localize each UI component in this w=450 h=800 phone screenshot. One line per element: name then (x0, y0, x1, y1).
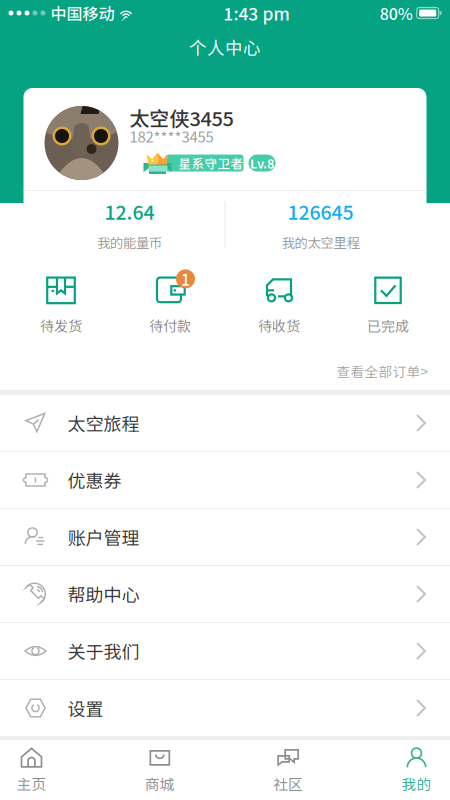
staticText: Lv.8 (250, 154, 274, 172)
button[interactable]: 太空旅程 (0, 395, 450, 452)
button[interactable]: 已完成 (333, 266, 442, 344)
staticText: 12.64 (104, 197, 154, 225)
button[interactable]: 126645 (225, 191, 415, 258)
staticText: 查看全部订单> (336, 361, 428, 381)
button[interactable]: 帮助中心 (0, 566, 450, 623)
staticText: 我的太空里程 (281, 232, 359, 252)
staticText: 个人中心 (189, 34, 261, 60)
staticText: 我的能量币 (97, 232, 162, 252)
button[interactable]: 我的 (384, 740, 448, 800)
button[interactable]: 账户管理 (0, 509, 450, 566)
staticText: 待收货 (258, 315, 300, 336)
button[interactable]: 待发货 (6, 266, 115, 344)
staticText: 已完成 (367, 315, 409, 336)
button[interactable]: 社区 (256, 740, 320, 800)
button[interactable]: 设置 (0, 680, 450, 736)
staticText: 主页 (16, 773, 46, 794)
button[interactable]: 查看全部订单> (0, 352, 450, 390)
staticText: 太空侠3455 (129, 103, 233, 132)
button[interactable]: 关于我们 (0, 623, 450, 680)
staticText: 星系守卫者 (178, 154, 243, 172)
button[interactable]: 主页 (0, 740, 63, 800)
staticText: 帮助中心 (67, 581, 139, 607)
staticText: 80% (380, 1, 413, 25)
button[interactable]: 12.64 (34, 191, 224, 258)
staticText: 1 (181, 267, 190, 290)
staticText: 182****3455 (129, 125, 213, 147)
staticText: 优惠券 (67, 467, 121, 493)
staticText: 我的 (401, 773, 431, 794)
staticText: 126645 (287, 197, 353, 225)
button[interactable]: 优惠券 (0, 452, 450, 509)
staticText: 1:43 pm (224, 0, 290, 26)
staticText: 社区 (273, 773, 303, 794)
staticText: 商城 (145, 773, 175, 794)
staticText: 关于我们 (67, 638, 139, 664)
button[interactable]: 1 (115, 266, 224, 344)
staticText: 中国移动 (50, 1, 114, 25)
staticText: 账户管理 (67, 524, 139, 550)
staticText: 太空旅程 (67, 410, 139, 436)
staticText: 设置 (67, 695, 103, 721)
button[interactable]: 商城 (128, 740, 192, 800)
button[interactable]: 待收货 (224, 266, 333, 344)
staticText: 待发货 (40, 315, 82, 336)
staticText: 待付款 (149, 315, 191, 336)
